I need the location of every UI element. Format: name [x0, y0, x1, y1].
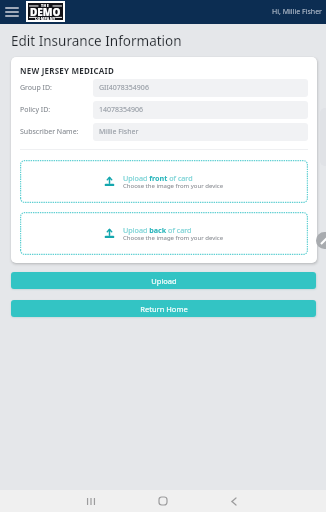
button[interactable]: Upload back of card [20, 212, 308, 255]
staticText: Upload back of card [123, 225, 192, 235]
button[interactable]: Home [152, 490, 174, 512]
staticText: 14078354906 [99, 105, 144, 115]
staticText: Millie Fisher [99, 127, 139, 137]
staticText: NEW JERSEY MEDICAID [20, 65, 114, 76]
button[interactable]: Upload front of card [20, 160, 308, 203]
staticText: Edit Insurance Information [11, 32, 182, 50]
button[interactable]: Menu [2, 2, 22, 22]
staticText: DEMO [30, 5, 61, 19]
staticText: Subscriber Name: [20, 127, 79, 137]
staticText: Policy ID: [20, 105, 51, 115]
staticText: Upload [151, 276, 177, 286]
button[interactable]: 14078354906 [93, 101, 308, 119]
staticText: Choose the image from your device [123, 234, 224, 242]
button[interactable]: Return Home [11, 300, 316, 317]
button[interactable]: Recents [80, 490, 102, 512]
button[interactable]: Millie Fisher [93, 123, 308, 141]
button[interactable]: Upload [11, 272, 316, 289]
button[interactable]: GII4078354906 [93, 79, 308, 97]
staticText: Return Home [140, 304, 188, 314]
staticText: Upload front of card [123, 173, 193, 183]
staticText: GII4078354906 [99, 83, 149, 93]
button[interactable]: Edit [316, 232, 326, 249]
staticText: THE [41, 3, 50, 8]
staticText: Choose the image from your device [123, 182, 224, 190]
staticText: Group ID: [20, 83, 52, 93]
staticText: Hi, Millie Fisher [272, 7, 322, 17]
button[interactable]: Back [223, 490, 245, 512]
staticText: COMPANY [35, 16, 56, 21]
